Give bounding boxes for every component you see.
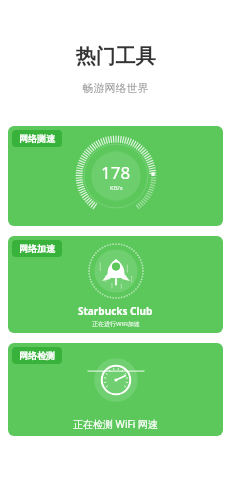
staticText: KB/s (110, 184, 123, 192)
button[interactable]: 网络检测 (12, 347, 62, 364)
button[interactable]: Network detection (8, 343, 223, 436)
button[interactable]: 网络加速 (12, 240, 62, 257)
staticText: 正在进行WiFi加速 (92, 320, 140, 328)
staticText: 正在检测 WiFi 网速 (73, 417, 158, 431)
staticText: 畅游网络世界 (0, 81, 231, 95)
button[interactable]: Network acceleration (8, 236, 223, 333)
staticText: 178 (101, 161, 131, 184)
staticText: 网络加速 (19, 243, 55, 254)
staticText: 网络检测 (19, 350, 55, 361)
staticText: 网络测速 (19, 133, 55, 144)
button[interactable]: Network speed test (8, 126, 223, 226)
staticText: 热门工具 (0, 44, 231, 69)
button[interactable]: 网络测速 (12, 130, 62, 147)
staticText: Starbucks Club (78, 304, 153, 318)
